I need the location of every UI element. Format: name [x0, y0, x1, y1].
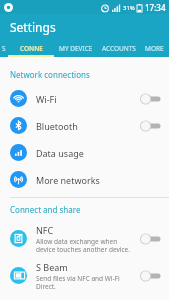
button[interactable]: CONNE [8, 39, 54, 57]
staticText: Wi-Fi [36, 93, 139, 105]
button[interactable]: Toggle [139, 92, 161, 106]
staticText: ACCOUNTS [102, 44, 136, 53]
staticText: MORE [145, 44, 164, 53]
button[interactable]: Bluetooth [0, 112, 169, 139]
staticText: Send files via NFC and Wi-Fi Direct. [36, 274, 135, 291]
staticText: Data usage [36, 147, 161, 159]
button[interactable]: Toggle [139, 232, 161, 246]
button[interactable]: Toggle [139, 119, 161, 133]
staticText: Allow data exchange when device touches … [36, 237, 135, 254]
staticText: Settings [10, 19, 56, 35]
staticText: CONNE [20, 44, 43, 53]
staticText: NFC [36, 224, 54, 236]
button[interactable]: NFC [0, 220, 169, 257]
button[interactable]: More networks [0, 166, 169, 193]
button[interactable]: MORE [140, 39, 169, 57]
staticText: S [2, 44, 6, 53]
staticText: Network connections [10, 69, 90, 80]
button[interactable]: MY DEVICE [54, 39, 98, 57]
button[interactable]: Toggle [139, 269, 161, 283]
button[interactable]: ACCOUNTS [98, 39, 140, 57]
staticText: Connect and share [10, 204, 81, 215]
staticText: 31% [123, 4, 135, 12]
staticText: S Beam [36, 261, 68, 273]
button[interactable]: S Beam [0, 257, 169, 294]
staticText: 17:34 [145, 2, 166, 13]
button[interactable]: S [0, 39, 8, 57]
button[interactable]: Data usage [0, 139, 169, 166]
staticText: Bluetooth [36, 120, 139, 132]
staticText: MY DEVICE [59, 44, 93, 53]
button[interactable]: Wi-Fi [0, 85, 169, 112]
staticText: More networks [36, 174, 161, 186]
